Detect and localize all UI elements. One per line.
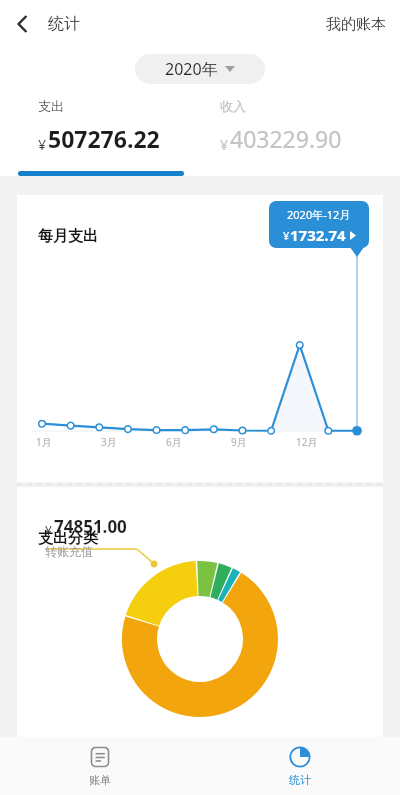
button[interactable]: 每月支出	[17, 195, 383, 482]
staticText: 统计	[48, 14, 80, 34]
staticText: 2020年	[165, 58, 218, 80]
staticText: 403229.90	[230, 123, 342, 154]
staticText: 我的账本	[326, 15, 386, 34]
staticText: 12月	[296, 435, 318, 449]
staticText: 3月	[101, 435, 117, 449]
staticText: 507276.22	[48, 123, 160, 154]
staticText: 74851.00	[54, 515, 127, 538]
staticText: ¥	[283, 228, 290, 243]
staticText: 统计	[289, 773, 311, 787]
button[interactable]: 支出	[0, 90, 200, 176]
button[interactable]: Back	[0, 4, 37, 44]
button[interactable]: 统计	[200, 737, 400, 795]
staticText: 支出分类	[38, 529, 98, 548]
staticText: 6月	[166, 435, 182, 449]
button[interactable]: 支出分类	[17, 487, 383, 737]
staticText: ¥	[45, 522, 52, 538]
button[interactable]: 收入	[200, 90, 400, 176]
staticText: 收入	[220, 98, 246, 114]
staticText: 转账充值	[45, 544, 93, 559]
staticText: 1732.74	[290, 225, 346, 245]
staticText: 1月	[36, 435, 52, 449]
staticText: 2020年-12月	[287, 207, 351, 222]
button[interactable]: 账单	[0, 737, 200, 795]
staticText: ¥	[38, 135, 47, 154]
staticText: 支出	[38, 98, 64, 114]
staticText: 9月	[231, 435, 247, 449]
staticText: 账单	[89, 773, 111, 787]
button[interactable]: 我的账本	[312, 5, 400, 44]
button[interactable]: 2020年	[135, 54, 265, 84]
staticText: ¥	[220, 135, 229, 154]
staticText: 每月支出	[38, 227, 98, 246]
